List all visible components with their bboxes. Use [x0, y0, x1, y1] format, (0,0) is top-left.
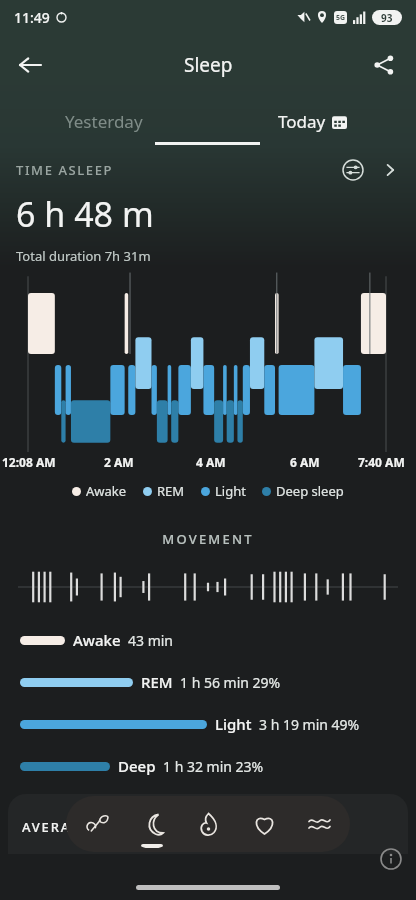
button[interactable]: Adjust sleep settings — [338, 155, 368, 185]
staticText: 5G — [336, 13, 346, 23]
staticText: 43 min — [128, 631, 174, 650]
staticText: MOVEMENT — [0, 530, 416, 548]
staticText: 7:40 AM — [358, 454, 405, 470]
button[interactable]: Sleep — [127, 799, 177, 849]
staticText: Deep sleep — [276, 482, 344, 500]
button[interactable]: Deep sleep — [262, 482, 344, 500]
staticText: REM — [157, 482, 185, 500]
staticText: Total duration 7h 31m — [16, 247, 151, 265]
staticText: 11:49 — [14, 8, 50, 27]
staticText: Light — [215, 714, 252, 734]
button[interactable]: Light — [0, 714, 416, 734]
button[interactable]: Info — [376, 844, 406, 874]
button[interactable]: Awake — [72, 482, 127, 500]
staticText: 2 AM — [104, 454, 134, 470]
button[interactable]: Heart rate — [239, 799, 289, 849]
button[interactable]: Share — [362, 43, 406, 87]
button[interactable]: Today — [208, 97, 416, 145]
button[interactable]: Activity — [72, 799, 122, 849]
staticText: 3 h 19 min 49% — [259, 715, 360, 734]
button[interactable]: REM — [143, 482, 185, 500]
staticText: Awake — [86, 482, 127, 500]
button[interactable]: Calories — [183, 799, 233, 849]
button[interactable]: More details — [376, 156, 404, 184]
staticText: Deep — [118, 756, 156, 776]
staticText: 6 AM — [290, 454, 320, 470]
button[interactable]: Trends — [294, 799, 344, 849]
staticText: 1 h 32 min 23% — [163, 757, 264, 776]
staticText: Today — [278, 110, 326, 133]
staticText: Awake — [73, 630, 121, 650]
button[interactable]: Deep — [0, 756, 416, 776]
staticText: AVERAGE — [22, 818, 91, 836]
button[interactable]: Sleep stages hypnogram — [0, 267, 416, 452]
staticText: 6 h 48 m — [16, 191, 154, 237]
button[interactable]: AVERAGE — [8, 794, 408, 854]
staticText: Yesterday — [65, 110, 143, 133]
staticText: TIME ASLEEP — [16, 161, 114, 179]
staticText: 12:08 AM — [2, 454, 56, 470]
button[interactable]: Awake — [0, 630, 416, 650]
staticText: Light — [215, 482, 246, 500]
button[interactable]: Yesterday — [0, 97, 208, 145]
staticText: 1 h 56 min 29% — [180, 673, 281, 692]
staticText: 4 AM — [196, 454, 226, 470]
button[interactable]: Light — [201, 482, 246, 500]
button[interactable]: Back — [8, 43, 52, 87]
staticText: Sleep — [184, 52, 233, 78]
button[interactable]: REM — [0, 672, 416, 692]
staticText: REM — [141, 672, 173, 692]
staticText: 93 — [381, 11, 393, 25]
